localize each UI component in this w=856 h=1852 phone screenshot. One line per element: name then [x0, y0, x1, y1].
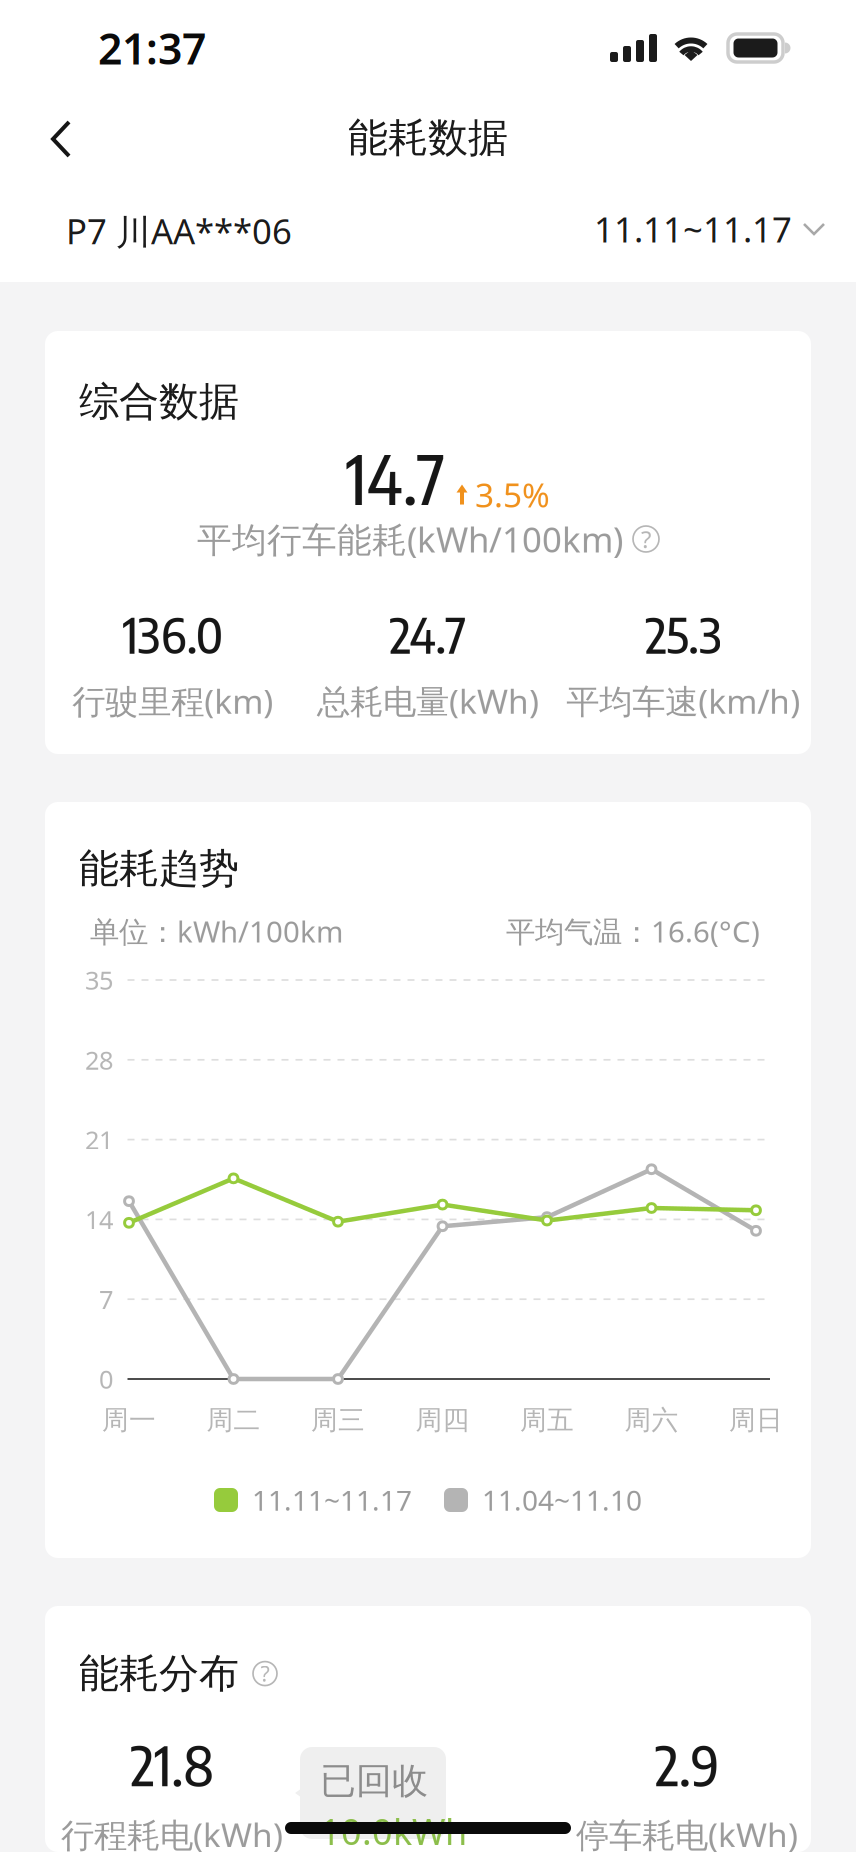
staticText: 能耗趋势: [79, 844, 239, 893]
staticText: 136.0: [123, 603, 223, 665]
staticText: 3.5%: [475, 472, 550, 517]
staticText: 能耗分布: [79, 1649, 239, 1698]
staticText: 7: [99, 1282, 113, 1316]
staticText: 行驶里程(km): [72, 679, 273, 723]
staticText: 平均行车能耗(kWh/100km): [197, 516, 623, 562]
staticText: 周四: [415, 1404, 469, 1436]
staticText: P7 川AA***06: [66, 208, 292, 254]
staticText: 周六: [624, 1404, 678, 1436]
staticText: 10.0kWh: [320, 1807, 467, 1852]
button[interactable]: 11.11~11.17: [584, 201, 836, 257]
staticText: ?: [641, 523, 651, 555]
staticText: 35: [85, 963, 113, 997]
staticText: 11.04~11.10: [482, 1481, 642, 1519]
staticText: 11.11~11.17: [252, 1481, 412, 1519]
staticText: 28: [85, 1043, 113, 1077]
staticText: 21.8: [130, 1730, 213, 1798]
staticText: 2.9: [655, 1730, 719, 1798]
staticText: 周一: [102, 1404, 156, 1436]
staticText: 已回收: [320, 1759, 428, 1803]
staticText: 21: [85, 1123, 113, 1156]
staticText: 周三: [311, 1404, 365, 1436]
staticText: 25.3: [645, 603, 721, 665]
staticText: 停车耗电(kWh): [576, 1812, 798, 1852]
staticText: 周日: [729, 1404, 783, 1436]
staticText: 总耗电量(kWh): [317, 679, 539, 723]
staticText: 11.11~11.17: [594, 206, 792, 252]
staticText: 能耗数据: [348, 113, 508, 162]
staticText: 周二: [206, 1404, 260, 1436]
staticText: 平均气温：16.6(°C): [506, 911, 760, 950]
staticText: 单位：kWh/100km: [90, 911, 343, 950]
staticText: 24.7: [389, 603, 466, 665]
staticText: 0: [99, 1362, 113, 1396]
staticText: 21:37: [98, 20, 206, 76]
staticText: 行程耗电(kWh): [61, 1812, 283, 1852]
staticText: 14: [85, 1203, 113, 1236]
staticText: 14.7: [346, 436, 445, 520]
staticText: 综合数据: [79, 377, 239, 426]
staticText: ?: [260, 1659, 269, 1688]
button[interactable]: Back: [18, 102, 104, 176]
staticText: 周五: [520, 1404, 574, 1436]
staticText: 平均车速(km/h): [566, 679, 800, 723]
